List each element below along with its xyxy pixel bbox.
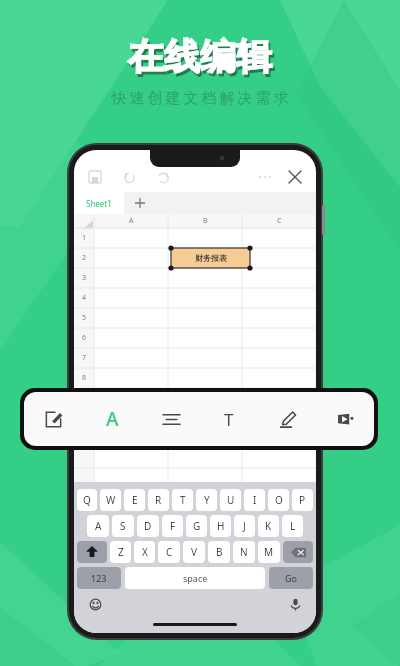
staticText: A [95,519,102,533]
button[interactable]: Voice input [285,594,305,614]
staticText: H [217,519,225,533]
staticText: K [265,519,272,533]
staticText: C [166,545,173,559]
button[interactable]: X [134,541,155,563]
button[interactable]: D [137,515,159,537]
staticText: S [120,519,126,533]
staticText: 在线编辑 [130,37,274,82]
staticText: U [227,493,235,507]
staticText: I [253,493,257,507]
staticText: J [243,519,246,533]
button[interactable]: Undo [118,166,140,188]
button[interactable]: L [282,515,303,537]
button[interactable]: G [186,515,207,537]
staticText: R [155,493,162,507]
staticText: B [216,545,223,559]
button[interactable]: Redo [152,166,174,188]
button[interactable]: Q [77,489,97,511]
staticText: Z [118,545,124,559]
staticText: T [180,493,186,507]
button[interactable]: P [292,489,313,511]
button[interactable]: space [125,567,265,589]
button[interactable]: V [183,541,205,563]
button[interactable]: Close [284,166,306,188]
button[interactable]: Go [269,567,313,589]
staticText: 快速创建文档解决需求 [110,89,290,108]
button[interactable]: B [208,541,230,563]
button[interactable]: Fill colour [316,392,374,446]
staticText: T [224,408,234,431]
button[interactable]: Add sheet [124,192,156,214]
staticText: A [129,216,134,226]
staticText: D [144,519,152,533]
button[interactable]: H [210,515,231,537]
button[interactable]: 123 [77,567,121,589]
staticText: A [106,406,119,432]
button[interactable]: S [112,515,134,537]
staticText: 6 [82,333,87,343]
button[interactable]: Align [142,392,200,446]
staticText: V [191,545,197,559]
staticText: X [142,545,148,559]
staticText: Y [204,493,210,507]
button[interactable]: M [258,541,280,563]
button[interactable]: C [158,541,180,563]
staticText: 4 [82,293,87,303]
button[interactable]: 财务报表 [171,248,250,268]
staticText: Go [285,572,297,584]
staticText: M [264,545,274,559]
staticText: 3 [82,273,87,283]
staticText: Sheet1 [86,198,112,209]
button[interactable]: U [220,489,241,511]
button[interactable]: Font colour [83,392,142,446]
button[interactable]: W [100,489,121,511]
button[interactable]: K [258,515,279,537]
staticText: 在线编辑 [128,34,272,79]
staticText: B [203,216,208,226]
button[interactable]: A [87,515,109,537]
button[interactable]: I [244,489,265,511]
staticText: G [193,519,201,533]
button[interactable]: Highlight [258,392,316,446]
button[interactable]: Backspace [283,541,313,563]
button[interactable]: Save [84,166,106,188]
staticText: O [275,493,283,507]
button[interactable]: Edit [24,392,83,446]
button[interactable]: O [268,489,289,511]
staticText: L [290,519,296,533]
staticText: N [240,545,248,559]
button[interactable]: Shift [77,541,107,563]
button[interactable]: Text [200,392,258,446]
staticText: Q [83,493,91,507]
button[interactable]: N [233,541,255,563]
staticText: 8 [82,373,87,383]
staticText: W [106,493,116,507]
button[interactable]: Sheet1 [74,192,124,214]
staticText: 123 [91,572,107,584]
button[interactable]: E [124,489,145,511]
button[interactable]: More [254,166,276,188]
button[interactable]: Emoji [85,594,105,614]
staticText: C [277,216,282,226]
staticText: 2 [82,253,87,263]
staticText: F [170,519,176,533]
button[interactable]: F [162,515,183,537]
staticText: space [183,572,208,584]
staticText: 1 [82,233,87,243]
button[interactable]: R [148,489,169,511]
staticText: 7 [82,353,87,363]
staticText: P [299,493,306,507]
staticText: 5 [82,313,87,323]
button[interactable]: Y [196,489,217,511]
staticText: E [132,493,138,507]
button[interactable]: T [172,489,193,511]
button[interactable]: J [234,515,255,537]
button[interactable]: Z [110,541,131,563]
staticText: 财务报表 [195,253,227,263]
